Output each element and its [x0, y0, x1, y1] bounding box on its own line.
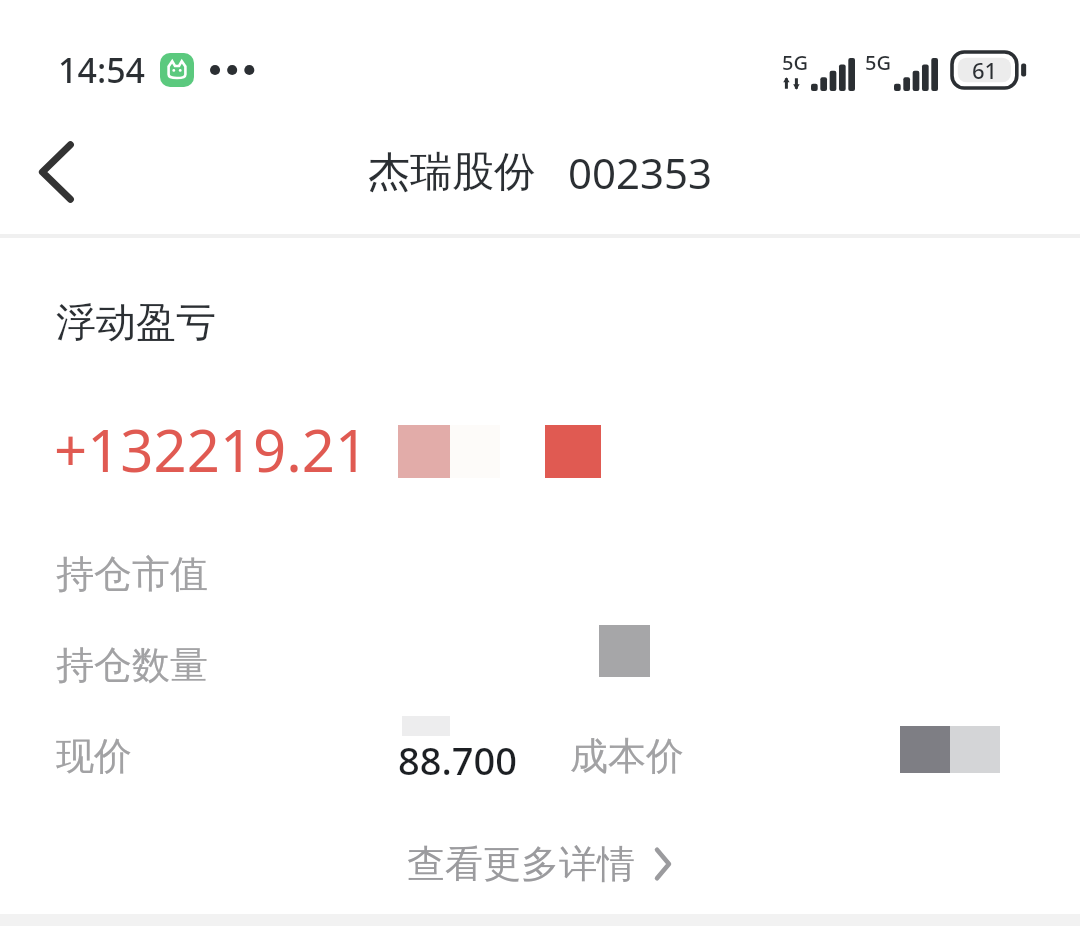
staticText: 浮动盈亏: [56, 297, 216, 347]
staticText: 现价: [56, 732, 132, 780]
staticText: 61: [972, 55, 998, 85]
staticText: 杰瑞股份: [368, 146, 536, 199]
staticText: +132219.21: [54, 410, 369, 489]
staticText: 成本价: [570, 732, 684, 780]
button[interactable]: Back: [0, 116, 112, 228]
button[interactable]: 查看更多详情: [0, 826, 1080, 902]
staticText: 002353: [568, 144, 713, 201]
staticText: 5G: [782, 49, 808, 76]
staticText: 5G: [865, 49, 891, 76]
staticText: 查看更多详情: [407, 840, 635, 888]
staticText: 持仓数量: [56, 641, 208, 689]
staticText: 14:54: [58, 47, 146, 93]
staticText: 持仓市值: [56, 550, 208, 598]
staticText: 88.700: [398, 734, 518, 786]
